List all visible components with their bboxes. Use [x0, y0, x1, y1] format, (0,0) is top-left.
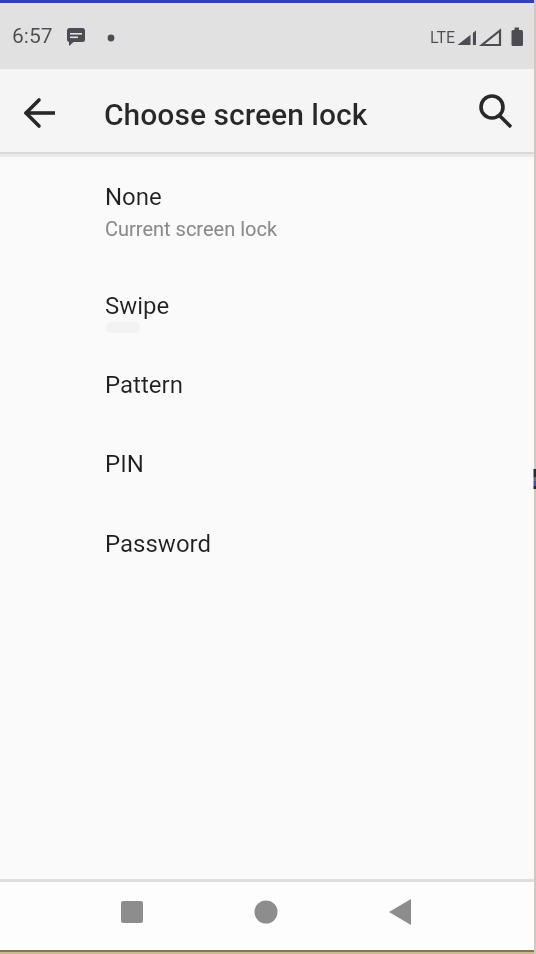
staticText: Choose screen lock	[104, 97, 368, 132]
staticText: Pattern	[105, 371, 183, 399]
staticText: Password	[105, 530, 212, 558]
staticText: PIN	[105, 450, 144, 478]
staticText: None	[105, 183, 162, 211]
staticText: Swipe	[105, 292, 170, 320]
staticText: 6:57	[12, 24, 53, 49]
staticText: LTE	[430, 28, 456, 47]
staticText: Current screen lock	[105, 217, 278, 240]
